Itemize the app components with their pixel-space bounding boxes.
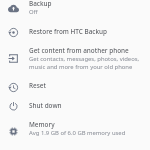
button[interactable] — [0, 21, 150, 43]
button[interactable] — [0, 47, 150, 69]
button[interactable] — [0, 76, 150, 98]
staticText: Restore from HTC Backup — [29, 27, 108, 36]
staticText: Off — [29, 8, 38, 16]
staticText: Backup — [29, 0, 52, 8]
staticText: Get contacts, messages, photos, videos, — [29, 55, 140, 63]
staticText: Reset — [29, 81, 46, 90]
button[interactable] — [0, 0, 150, 19]
staticText: Avg 1.9 GB of 6.0 GB memory used — [29, 129, 126, 137]
staticText: Shut down — [29, 101, 62, 110]
staticText: Get content from another phone — [29, 46, 129, 55]
button[interactable] — [0, 120, 150, 142]
button[interactable] — [0, 95, 150, 117]
staticText: Memory — [29, 120, 55, 129]
staticText: music and more from your old phone — [29, 63, 133, 71]
